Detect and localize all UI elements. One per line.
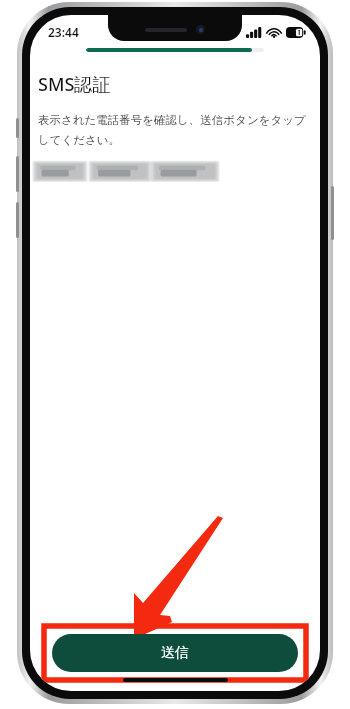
staticText: 表示された電話番号を確認し、送信ボタンをタップしてください。 — [38, 113, 308, 147]
staticText: SMS認証 — [38, 72, 111, 97]
staticText: 23:44 — [48, 24, 79, 40]
button[interactable]: 送信 — [52, 634, 298, 672]
staticText: 送信 — [161, 644, 189, 662]
